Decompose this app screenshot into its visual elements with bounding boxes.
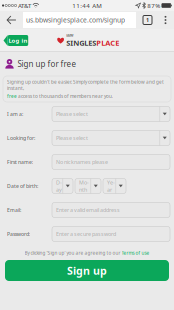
- staticText: Log in: [8, 36, 27, 44]
- button[interactable]: Back: [0, 11, 23, 29]
- button[interactable]: Tabs: [138, 11, 157, 29]
- staticText: Month: [79, 179, 89, 193]
- staticText: Date of birth:: [7, 182, 38, 189]
- staticText: 11:44 AM: [72, 1, 102, 10]
- staticText: Day: [56, 179, 62, 193]
- button[interactable]: Enter a valid email address: [52, 202, 170, 217]
- staticText: First name:: [7, 158, 33, 165]
- button[interactable]: Month: [75, 178, 101, 193]
- staticText: free: [7, 93, 17, 99]
- button[interactable]: Year: [103, 178, 126, 193]
- staticText: I am a:: [7, 110, 23, 117]
- button[interactable]: No nicknames please: [52, 154, 170, 169]
- button[interactable]: Log in: [0, 35, 28, 46]
- button[interactable]: us.bbwsinglesplace.com/signup: [23, 12, 136, 28]
- button[interactable]: Terms of use: [121, 250, 149, 256]
- staticText: No nicknames please: [56, 158, 108, 166]
- staticText: Please select: [56, 134, 88, 142]
- staticText: Enter a secure password: [56, 230, 116, 238]
- staticText: SINGLES: [66, 38, 96, 48]
- staticText: Email:: [7, 206, 21, 213]
- staticText: Please select: [56, 110, 88, 118]
- staticText: access to thousands of members near you.: [17, 93, 113, 99]
- button[interactable]: Day: [52, 178, 73, 193]
- staticText: BBW: [66, 33, 73, 38]
- staticText: Sign up: [67, 263, 107, 278]
- staticText: Password:: [7, 230, 30, 237]
- staticText: us.bbwsinglesplace.com/signup: [26, 15, 125, 25]
- staticText: Year: [107, 179, 115, 193]
- staticText: PLACE: [96, 38, 119, 48]
- button[interactable]: Please select: [52, 106, 170, 121]
- staticText: Terms of use: [121, 250, 149, 256]
- staticText: AT&T: [18, 1, 31, 10]
- staticText: Enter a valid email address: [56, 206, 120, 214]
- button[interactable]: Please select: [52, 130, 170, 145]
- staticText: Signing up couldn't be easier. Simply co…: [7, 79, 164, 91]
- staticText: 1: [146, 16, 149, 24]
- button[interactable]: Enter a secure password: [52, 226, 170, 241]
- staticText: By clicking 'Sign up' you are agreeing t…: [24, 250, 121, 256]
- staticText: 87%: [147, 1, 160, 10]
- button[interactable]: More options: [157, 11, 174, 29]
- staticText: Looking for:: [7, 134, 35, 141]
- button[interactable]: Sign up: [0, 260, 169, 281]
- staticText: Sign up for free: [17, 59, 76, 69]
